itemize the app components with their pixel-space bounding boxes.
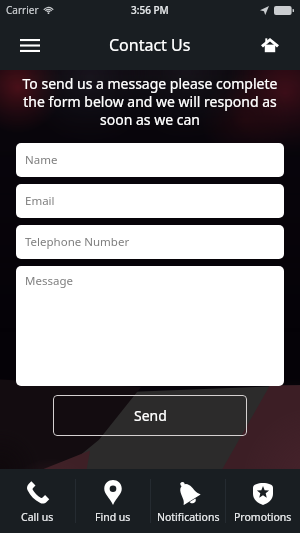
button[interactable]: Open navigation menu bbox=[8, 23, 52, 67]
staticText: Carrier bbox=[6, 3, 39, 17]
button[interactable]: Notifications bbox=[151, 469, 225, 533]
staticText: Name bbox=[25, 152, 58, 168]
button[interactable]: Call us bbox=[0, 469, 75, 533]
button[interactable]: Send bbox=[53, 395, 247, 436]
button[interactable]: Message bbox=[16, 266, 284, 386]
button[interactable]: Promotions bbox=[226, 469, 300, 533]
staticText: Telephone Number bbox=[25, 234, 130, 250]
button[interactable]: Find us bbox=[76, 469, 150, 533]
button[interactable]: Home bbox=[248, 23, 292, 67]
staticText: Contact Us bbox=[109, 34, 191, 56]
button[interactable]: Name bbox=[16, 143, 284, 177]
staticText: Find us bbox=[95, 510, 131, 524]
staticText: Email bbox=[25, 193, 55, 209]
staticText: Call us bbox=[21, 510, 54, 524]
staticText: Promotions bbox=[234, 510, 292, 524]
staticText: To send us a message please complete the… bbox=[20, 74, 280, 129]
button[interactable]: Email bbox=[16, 184, 284, 218]
button[interactable]: Telephone Number bbox=[16, 225, 284, 259]
staticText: Notifications bbox=[157, 510, 220, 524]
staticText: Message bbox=[25, 273, 73, 289]
staticText: Send bbox=[134, 406, 167, 425]
staticText: 3:56 PM bbox=[131, 3, 169, 17]
